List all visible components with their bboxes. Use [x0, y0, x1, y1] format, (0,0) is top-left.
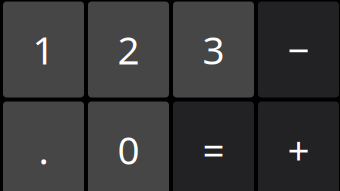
staticText: 3 [202, 24, 224, 75]
button[interactable]: Plus [258, 101, 339, 191]
staticText: 1 [32, 24, 54, 75]
button[interactable]: 3 [173, 1, 254, 97]
staticText: = [202, 124, 224, 175]
staticText: − [287, 24, 309, 75]
button[interactable]: 0 [88, 101, 169, 191]
button[interactable]: 2 [88, 1, 169, 97]
button[interactable]: Equals [173, 101, 254, 191]
staticText: 2 [117, 24, 139, 75]
button[interactable]: Minus [258, 1, 339, 97]
button[interactable]: Decimal point [3, 101, 84, 191]
staticText: . [38, 124, 48, 175]
staticText: 0 [117, 124, 139, 175]
staticText: + [287, 124, 309, 175]
button[interactable]: 1 [3, 1, 84, 97]
